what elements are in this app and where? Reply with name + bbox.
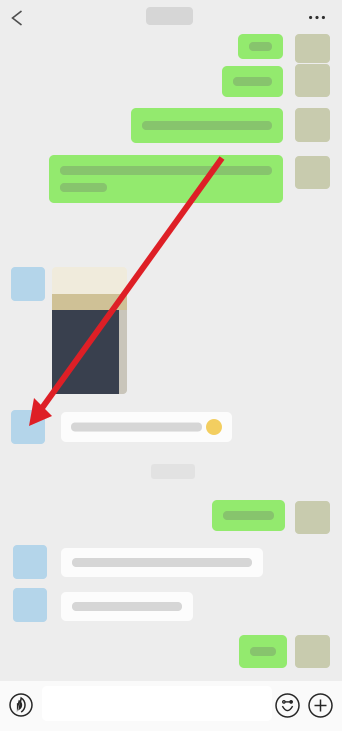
button[interactable]	[49, 155, 283, 203]
button[interactable]: Photo	[52, 267, 127, 394]
button[interactable]	[61, 548, 263, 577]
button[interactable]: Emoji	[276, 694, 299, 717]
button[interactable]	[222, 66, 283, 97]
button[interactable]	[238, 34, 283, 59]
button[interactable]	[61, 592, 193, 621]
button[interactable]	[239, 635, 287, 668]
button[interactable]	[61, 412, 232, 442]
button[interactable]: More	[302, 3, 332, 32]
button[interactable]	[131, 108, 283, 143]
button[interactable]	[212, 500, 285, 531]
button[interactable]: More options	[309, 694, 332, 717]
button[interactable]: Back	[2, 3, 32, 33]
button[interactable]: Voice message	[10, 694, 32, 716]
